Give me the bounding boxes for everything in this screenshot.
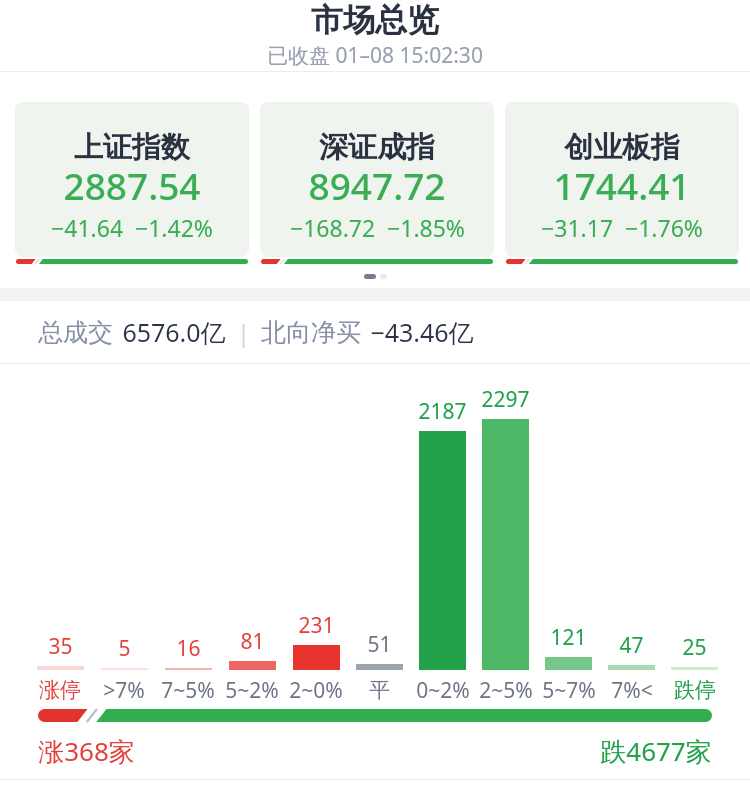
staticText: 5 — [118, 634, 131, 663]
staticText: 6576.0亿 — [122, 315, 226, 349]
staticText: 35 — [48, 632, 73, 661]
staticText: 上证指数 — [74, 129, 190, 166]
staticText: 跌4677家 — [600, 733, 712, 769]
staticText: | — [237, 317, 250, 348]
staticText: 北向净买 — [261, 317, 361, 348]
staticText: 47 — [619, 631, 644, 660]
button[interactable]: 上证指数 — [15, 102, 249, 257]
staticText: 总成交 — [38, 317, 113, 348]
staticText: 8947.72 — [308, 160, 446, 210]
staticText: 16 — [176, 634, 201, 663]
staticText: −168.72 −1.85% — [290, 212, 465, 243]
staticText: −41.64 −1.42% — [51, 212, 213, 243]
staticText: 已收盘 01–08 15:02:30 — [267, 41, 483, 70]
staticText: 2~5% — [479, 676, 533, 704]
staticText: −43.46亿 — [370, 315, 474, 349]
staticText: 跌停 — [674, 677, 716, 703]
staticText: 市场总览 — [311, 0, 439, 40]
staticText: 7%< — [611, 676, 653, 704]
button[interactable]: 总成交 — [38, 315, 474, 349]
staticText: 1744.41 — [553, 160, 691, 210]
staticText: 121 — [550, 623, 587, 652]
staticText: 2187 — [418, 397, 467, 426]
staticText: 深证成指 — [319, 129, 435, 166]
staticText: 平 — [369, 677, 390, 703]
staticText: 25 — [682, 633, 707, 662]
staticText: 231 — [298, 611, 335, 640]
staticText: −31.17 −1.76% — [541, 212, 703, 243]
staticText: 7~5% — [161, 676, 215, 704]
staticText: 涨368家 — [38, 733, 135, 769]
staticText: 51 — [367, 630, 392, 659]
button[interactable]: 深证成指 — [260, 102, 494, 257]
staticText: 0~2% — [416, 676, 470, 704]
staticText: 5~7% — [542, 676, 596, 704]
staticText: 2~0% — [289, 676, 343, 704]
staticText: 创业板指 — [564, 129, 680, 166]
staticText: 涨停 — [39, 677, 81, 703]
staticText: >7% — [103, 676, 145, 704]
staticText: 5~2% — [225, 676, 279, 704]
staticText: 2297 — [481, 385, 530, 414]
button[interactable]: 创业板指 — [505, 102, 739, 257]
staticText: 2887.54 — [63, 160, 201, 210]
staticText: 81 — [240, 627, 265, 656]
